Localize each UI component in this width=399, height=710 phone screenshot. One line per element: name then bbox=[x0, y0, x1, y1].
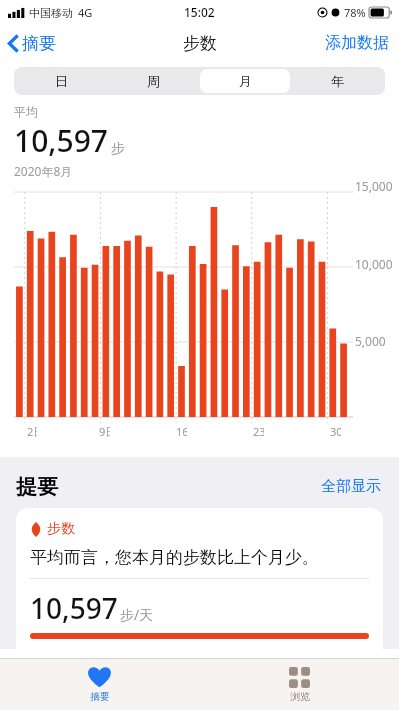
staticText: 10,597 bbox=[30, 589, 118, 627]
staticText: 10,000 bbox=[355, 256, 393, 272]
staticText: 10,597 bbox=[14, 120, 108, 161]
button[interactable]: 摘要 bbox=[0, 659, 199, 710]
staticText: 周 bbox=[147, 73, 160, 89]
staticText: 平均 bbox=[14, 104, 38, 119]
button[interactable]: 步数 bbox=[16, 508, 383, 649]
button[interactable]: 月 bbox=[200, 69, 290, 93]
staticText: 添加数据 bbox=[325, 33, 389, 53]
button[interactable]: 摘要 bbox=[0, 29, 64, 58]
staticText: 步数 bbox=[47, 520, 75, 538]
staticText: 浏览 bbox=[290, 690, 310, 703]
staticText: 5,000 bbox=[355, 333, 386, 349]
button[interactable]: 年 bbox=[292, 69, 382, 93]
staticText: 15,000 bbox=[355, 178, 393, 194]
staticText: 78% bbox=[344, 5, 366, 20]
staticText: 步 bbox=[111, 140, 125, 158]
staticText: 中国移动 bbox=[29, 6, 73, 20]
staticText: 摘要 bbox=[90, 690, 110, 703]
staticText: 步数 bbox=[183, 33, 217, 54]
staticText: 4G bbox=[78, 5, 93, 20]
button[interactable]: 日 bbox=[17, 69, 106, 93]
staticText: 30 bbox=[330, 424, 341, 439]
staticText: 2日 bbox=[27, 424, 37, 439]
staticText: 摘要 bbox=[22, 33, 56, 54]
button[interactable]: 周 bbox=[108, 69, 198, 93]
staticText: 9日 bbox=[99, 424, 110, 439]
staticText: 日 bbox=[55, 73, 68, 89]
staticText: 2020年8月 bbox=[14, 163, 73, 179]
button[interactable]: 浏览 bbox=[199, 659, 399, 710]
staticText: 15:02 bbox=[184, 4, 215, 20]
button[interactable]: 添加数据 bbox=[315, 28, 399, 58]
staticText: 23日 bbox=[253, 424, 264, 439]
button[interactable]: 全部显示 bbox=[317, 473, 385, 500]
staticText: 步/天 bbox=[120, 605, 154, 624]
staticText: 全部显示 bbox=[321, 477, 381, 496]
staticText: 16日 bbox=[176, 424, 187, 439]
staticText: 月 bbox=[239, 73, 252, 89]
staticText: 平均而言，您本月的步数比上个月少。 bbox=[30, 547, 319, 568]
staticText: 年 bbox=[331, 73, 344, 89]
staticText: 提要 bbox=[16, 474, 58, 500]
